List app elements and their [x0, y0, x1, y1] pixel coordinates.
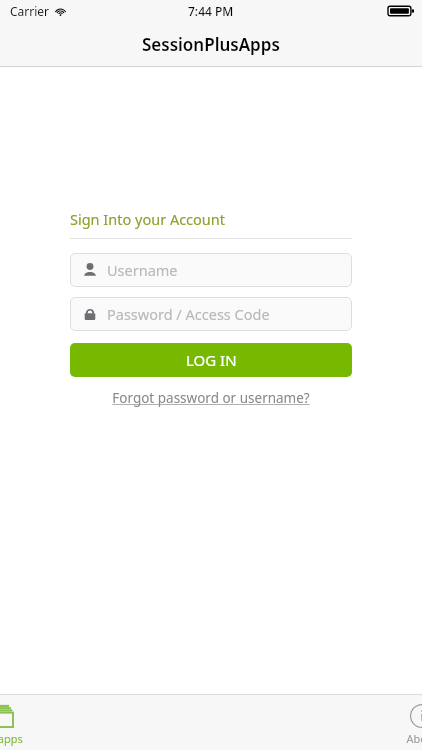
- staticText: Carrier: [10, 3, 50, 19]
- staticText: Sign Into your Account: [70, 209, 226, 229]
- button[interactable]: Password / Access Code: [70, 297, 352, 331]
- button[interactable]: My apps: [0, 700, 44, 746]
- staticText: 7:44 PM: [188, 3, 234, 19]
- staticText: Password / Access Code: [107, 304, 270, 324]
- staticText: My apps: [0, 731, 23, 746]
- staticText: SessionPlusApps: [142, 33, 280, 56]
- staticText: Username: [107, 260, 178, 280]
- staticText: Forgot password or username?: [112, 389, 310, 407]
- staticText: About: [406, 731, 422, 746]
- button[interactable]: Username: [70, 253, 352, 287]
- button[interactable]: About: [379, 700, 422, 746]
- button[interactable]: Forgot password or username?: [70, 389, 352, 407]
- staticText: LOG IN: [186, 350, 237, 370]
- button[interactable]: LOG IN: [70, 343, 352, 377]
